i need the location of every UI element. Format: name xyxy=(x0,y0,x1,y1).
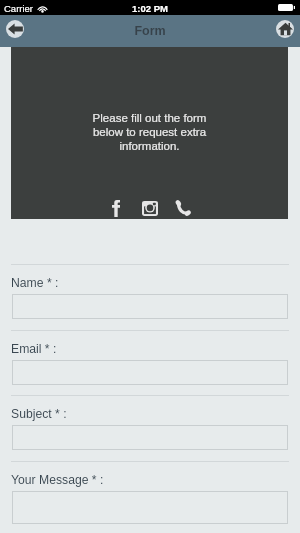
staticText: Please fill out the form below to reques… xyxy=(11,112,288,153)
button[interactable]: Name * : xyxy=(12,294,288,319)
button[interactable]: Instagram xyxy=(141,199,158,217)
button[interactable]: Home xyxy=(276,20,294,38)
staticText: Name * : xyxy=(11,276,59,290)
staticText: Carrier xyxy=(4,3,34,14)
button[interactable]: Call xyxy=(174,199,192,217)
button[interactable]: Your Message * : xyxy=(12,491,288,524)
button[interactable]: Subject * : xyxy=(12,425,288,450)
button[interactable]: Back xyxy=(6,20,24,38)
staticText: Form xyxy=(0,24,300,38)
staticText: Subject * : xyxy=(11,407,67,421)
staticText: 1:02 PM xyxy=(0,3,300,14)
staticText: Email * : xyxy=(11,342,57,356)
staticText: Your Message * : xyxy=(11,473,104,487)
button[interactable]: Email * : xyxy=(12,360,288,385)
button[interactable]: Facebook xyxy=(106,199,125,217)
